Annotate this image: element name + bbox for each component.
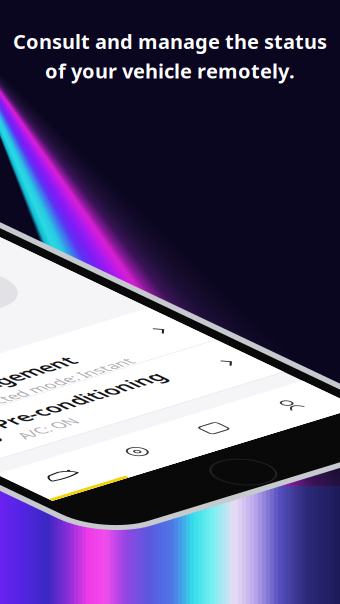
button[interactable]: Account	[260, 460, 340, 522]
staticText: A/C: ON	[85, 406, 143, 428]
staticText: Selected mode: Instant	[85, 346, 259, 367]
button[interactable]: Services	[180, 460, 260, 522]
button[interactable]: Charge management	[20, 290, 340, 364]
button[interactable]: AC	[20, 365, 340, 439]
staticText: of your vehicle remotely.	[45, 57, 295, 84]
staticText: AVAILABLE (Battery	[42, 206, 185, 226]
button[interactable]: Vehicle	[20, 460, 100, 522]
staticText: Charge management	[85, 287, 223, 344]
button[interactable]: Locate	[100, 460, 180, 522]
staticText: Consult and manage the status	[13, 28, 327, 54]
staticText: less than 40%)	[42, 227, 146, 246]
staticText: 734 mi	[42, 169, 116, 199]
staticText: Pre-conditioning	[85, 376, 258, 404]
staticText: AC	[47, 395, 61, 409]
